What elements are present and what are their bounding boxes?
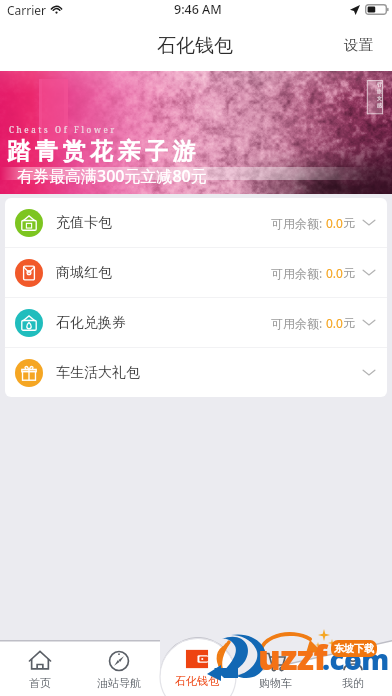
staticText: 购物车 (259, 676, 292, 690)
staticText: 可用余额: (271, 315, 326, 331)
staticText: 可用余额: (271, 215, 326, 231)
button[interactable]: 充值卡包 (5, 198, 387, 247)
staticText: 首页 (29, 676, 51, 690)
staticText: 有券最高满300元立减80元 (17, 165, 207, 187)
staticText: 油站导航 (97, 676, 141, 690)
staticText: 石化钱包 (175, 674, 219, 688)
button[interactable]: 石化钱包 (158, 640, 236, 696)
staticText: 商城红包 (56, 264, 112, 282)
staticText: 可用余额: (271, 265, 326, 281)
staticText: 元 (343, 265, 355, 280)
button[interactable]: 设置 (330, 26, 392, 64)
staticText: 东坡下载 (334, 642, 374, 655)
button[interactable]: 首页 (0, 640, 79, 696)
staticText: 0.0 (326, 265, 343, 281)
button[interactable]: 石化兑换券 (5, 298, 387, 347)
staticText: 9:46 AM (174, 1, 222, 18)
staticText: 行 旅 文 感 (377, 81, 382, 109)
button[interactable]: 我的 (314, 640, 392, 696)
staticText: 踏青赏花亲子游 (7, 137, 201, 166)
staticText: 元 (343, 315, 355, 330)
staticText: 石化兑换券 (56, 314, 126, 332)
staticText: 充值卡包 (56, 214, 112, 232)
staticText: 石化钱包 (157, 34, 233, 58)
button[interactable]: 油站导航 (79, 640, 158, 696)
staticText: C h e a t s O f F l o w e r (9, 124, 115, 135)
staticText: .com (322, 640, 389, 678)
staticText: 0.0 (326, 215, 343, 231)
button[interactable]: 购物车 (236, 640, 314, 696)
button[interactable]: 车生活大礼包 (5, 348, 387, 397)
button[interactable]: 商城红包 (5, 248, 387, 297)
button[interactable]: 行 旅 文 感 (0, 71, 392, 194)
staticText: uzzf (258, 634, 327, 680)
staticText: 0.0 (326, 315, 343, 331)
staticText: 车生活大礼包 (56, 364, 140, 382)
staticText: 元 (343, 215, 355, 230)
staticText: Carrier (7, 2, 47, 18)
staticText: 设置 (344, 36, 373, 54)
staticText: 我的 (342, 676, 364, 690)
